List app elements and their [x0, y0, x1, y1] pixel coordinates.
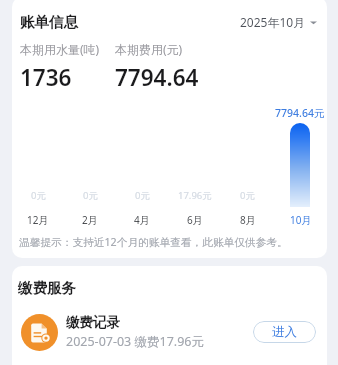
staticText: 账单信息	[20, 13, 78, 31]
staticText: 6月	[187, 213, 203, 227]
staticText: 缴费记录	[66, 314, 120, 331]
staticText: 10月	[290, 213, 312, 227]
button[interactable]: 缴费记录	[12, 310, 327, 354]
button[interactable]: 2025年10月	[240, 14, 317, 30]
staticText: 本期费用(元)	[115, 41, 183, 57]
other: 缴费记录	[21, 314, 58, 351]
staticText: 2025年10月	[240, 14, 306, 30]
staticText: 本期用水量(吨)	[20, 41, 100, 57]
staticText: 2025-07-03 缴费17.96元	[66, 333, 204, 350]
staticText: 2月	[82, 213, 98, 227]
staticText: 4月	[134, 213, 150, 227]
staticText: 缴费服务	[18, 279, 76, 297]
staticText: 温馨提示：支持近12个月的账单查看，此账单仅供参考。	[19, 235, 288, 250]
staticText: 1736	[20, 62, 72, 93]
staticText: 0元	[83, 189, 98, 202]
staticText: 进入	[272, 324, 297, 340]
staticText: 8月	[240, 213, 256, 227]
staticText: 0元	[31, 189, 46, 202]
staticText: 7794.64元	[275, 106, 325, 120]
staticText: 0元	[135, 189, 150, 202]
staticText: 0元	[240, 189, 255, 202]
button[interactable]: 进入	[253, 321, 316, 343]
staticText: 7794.64	[115, 62, 199, 93]
staticText: 12月	[27, 213, 49, 227]
staticText: 17.96元	[178, 189, 212, 202]
